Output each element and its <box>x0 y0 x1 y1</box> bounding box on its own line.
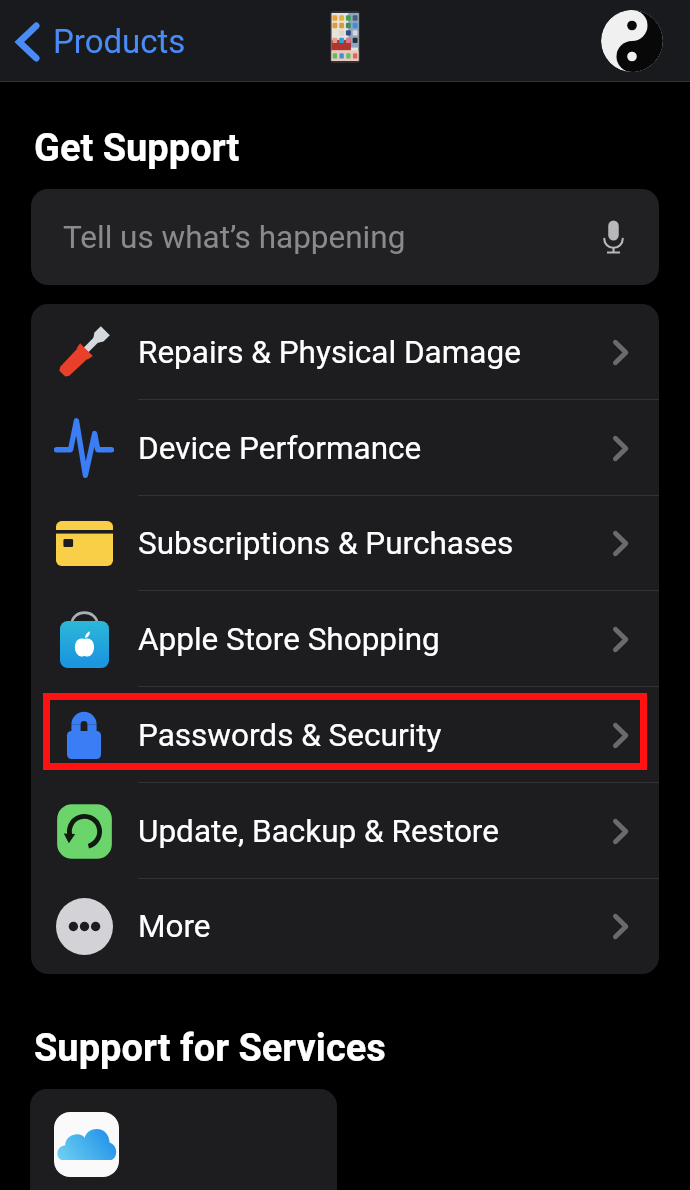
button[interactable]: Repairs & Physical Damage <box>31 304 659 400</box>
button[interactable]: Passwords & Security <box>31 687 659 783</box>
button[interactable]: Account <box>601 10 663 72</box>
button[interactable]: More <box>31 878 659 974</box>
staticText: Passwords & Security <box>138 717 613 754</box>
button[interactable]: Tell us what’s happening <box>31 189 659 285</box>
staticText: Repairs & Physical Damage <box>138 334 613 371</box>
staticText: Tell us what’s happening <box>63 219 601 256</box>
button[interactable]: Subscriptions & Purchases <box>31 495 659 591</box>
button[interactable]: Voice search <box>601 219 626 255</box>
staticText: Subscriptions & Purchases <box>138 525 613 562</box>
staticText: Update, Backup & Restore <box>138 813 613 850</box>
button[interactable]: Products <box>0 14 198 69</box>
button[interactable]: Device Performance <box>31 400 659 496</box>
button[interactable] <box>30 1089 337 1190</box>
staticText: Apple Store Shopping <box>138 621 613 658</box>
button[interactable]: Update, Backup & Restore <box>31 783 659 879</box>
staticText: Get Support <box>34 126 240 171</box>
button[interactable]: Apple Store Shopping <box>31 591 659 687</box>
staticText: Products <box>53 22 186 61</box>
staticText: More <box>138 908 613 945</box>
staticText: Device Performance <box>138 430 613 467</box>
staticText: Support for Services <box>34 1026 386 1071</box>
